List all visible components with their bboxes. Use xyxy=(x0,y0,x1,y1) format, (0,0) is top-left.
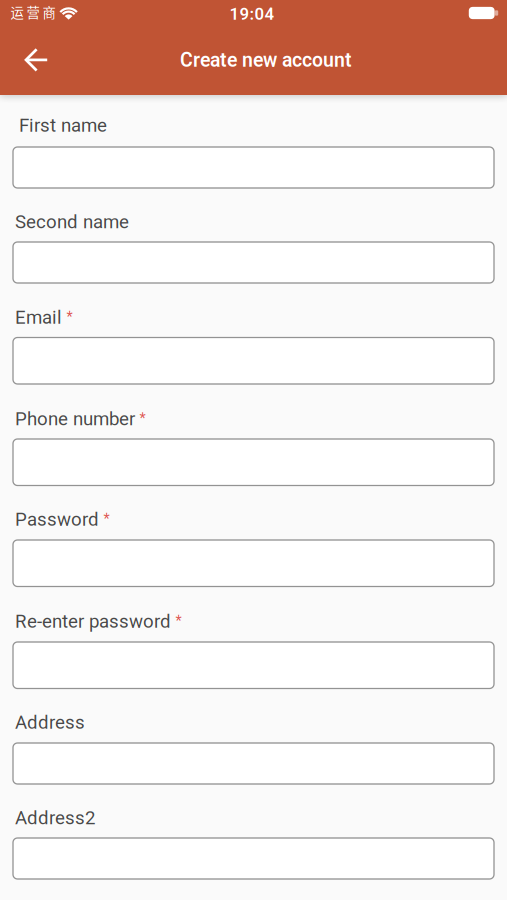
button[interactable]: Second name xyxy=(13,242,494,283)
staticText: * xyxy=(139,410,145,427)
button[interactable]: Email xyxy=(13,337,494,384)
button[interactable]: Address xyxy=(13,743,494,784)
button[interactable]: Back xyxy=(12,38,56,82)
staticText: * xyxy=(175,612,181,629)
button[interactable]: Password xyxy=(13,540,494,586)
button[interactable]: Address2 xyxy=(13,838,494,879)
staticText: Phone number xyxy=(15,408,135,430)
button[interactable]: First name xyxy=(13,147,494,188)
staticText: Second name xyxy=(15,211,129,233)
staticText: * xyxy=(66,308,72,325)
staticText: 运 营 商 xyxy=(10,2,55,21)
button[interactable]: Phone number xyxy=(13,439,494,485)
staticText: Re-enter password xyxy=(15,610,171,632)
staticText: Address2 xyxy=(15,807,95,829)
staticText: First name xyxy=(19,114,107,136)
staticText: * xyxy=(103,510,109,527)
staticText: Address xyxy=(15,711,85,733)
button[interactable]: Re-enter password xyxy=(13,642,494,688)
staticText: Password xyxy=(15,508,99,530)
staticText: 19:04 xyxy=(229,4,274,24)
staticText: Email xyxy=(15,306,62,328)
staticText: Create new account xyxy=(180,49,352,71)
